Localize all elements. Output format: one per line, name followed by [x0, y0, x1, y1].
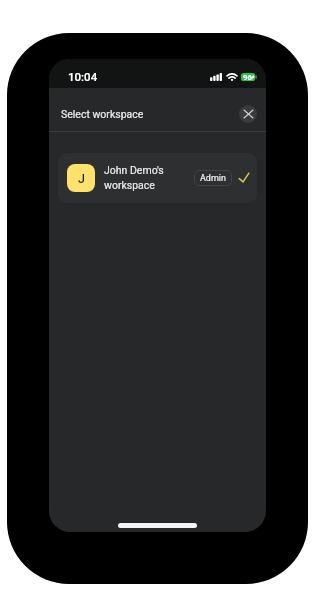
button[interactable]: Close	[239, 105, 257, 123]
staticText: Admin	[200, 173, 226, 184]
staticText: John Demo's workspace	[104, 164, 194, 192]
staticText: Select workspace	[61, 108, 144, 120]
staticText: J	[78, 171, 85, 186]
button[interactable]: J	[58, 153, 257, 203]
staticText: 96	[243, 73, 252, 81]
staticText: 10:04	[68, 70, 98, 83]
